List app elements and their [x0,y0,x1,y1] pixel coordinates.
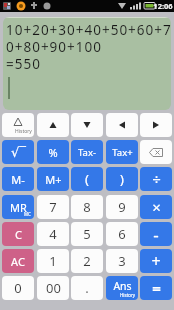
staticText: 00 [46,279,61,297]
button[interactable]: × [140,195,172,219]
staticText: % [48,145,58,160]
button[interactable]: ÷ [140,167,172,191]
button[interactable]: . [71,276,103,300]
staticText: 3 [118,252,126,270]
staticText: 5 [83,225,91,243]
button[interactable]: ( [71,167,103,191]
button[interactable]: History [2,113,34,137]
staticText: History [15,128,32,135]
staticText: M- [11,172,25,187]
staticText: Ans [113,279,132,293]
button[interactable]: % [37,140,69,164]
staticText: History [120,292,136,298]
button[interactable] [106,113,138,137]
button[interactable]: + [140,249,172,273]
button[interactable]: 9 [106,195,138,219]
button[interactable] [140,140,172,164]
staticText: Tax+ [112,146,133,159]
staticText: 9 [118,198,126,216]
button[interactable]: 8 [71,195,103,219]
button[interactable]: Tax- [71,140,103,164]
button[interactable]: 0 [2,276,34,300]
button[interactable]: ) [106,167,138,191]
staticText: 7 [49,198,57,216]
button[interactable]: 3 [106,249,138,273]
button[interactable]: M+ [37,167,69,191]
staticText: AC [11,254,25,269]
button[interactable]: C [2,222,34,246]
staticText: ÷ [152,169,161,189]
staticText: + [151,250,161,272]
button[interactable]: AC [2,249,34,273]
button[interactable]: Ans [106,276,138,300]
button[interactable] [37,113,69,137]
staticText: ) [120,170,124,188]
staticText: 2 [83,252,91,270]
button[interactable] [140,113,172,137]
staticText: 0 [14,279,22,297]
button[interactable]: 7 [37,195,69,219]
staticText: × [152,197,161,217]
button[interactable]: = [140,276,172,300]
button[interactable]: 4 [37,222,69,246]
button[interactable]: M- [2,167,34,191]
staticText: MC [24,211,31,217]
button[interactable]: 5 [71,222,103,246]
button[interactable]: √‾ [2,140,34,164]
button[interactable]: MR [2,195,34,219]
button[interactable]: 00 [37,276,69,300]
staticText: C [15,227,22,242]
staticText: =550 [6,55,41,73]
button[interactable]: - [140,222,172,246]
staticText: 6 [118,225,126,243]
staticText: M+ [45,172,62,187]
staticText: 10+20+30+40+50+60+7 [6,21,171,39]
staticText: . [85,279,89,297]
staticText: = [152,278,161,298]
button[interactable]: 2 [71,249,103,273]
staticText: MR [10,200,27,215]
staticText: 12:06 [153,1,173,11]
button[interactable]: 1 [37,249,69,273]
staticText: Tax- [78,146,96,159]
staticText: √‾ [11,143,26,161]
button[interactable] [71,113,103,137]
staticText: ( [85,170,89,188]
staticText: 8 [83,198,91,216]
staticText: - [153,223,159,246]
staticText: 4 [49,225,57,243]
staticText: 0+80+90+100 [6,38,102,56]
staticText: 1 [49,252,57,270]
button[interactable]: 6 [106,222,138,246]
button[interactable]: Tax+ [106,140,138,164]
